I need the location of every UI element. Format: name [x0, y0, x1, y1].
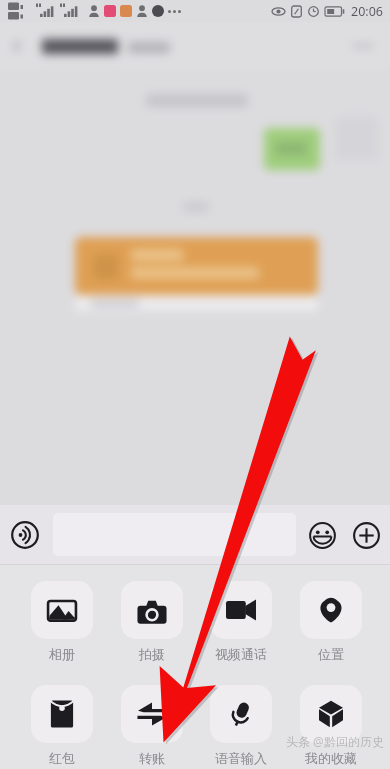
- button[interactable]: 转账: [108, 685, 196, 766]
- staticText: 视频通话: [215, 646, 267, 662]
- other: Back: [8, 37, 26, 55]
- button[interactable]: 相册: [18, 581, 106, 662]
- button[interactable]: Voice input: [7, 517, 43, 553]
- button[interactable]: 拍摄: [108, 581, 196, 662]
- button[interactable]: 视频通话: [197, 581, 285, 662]
- button[interactable]: 位置: [287, 581, 375, 662]
- button[interactable]: 我的收藏: [287, 685, 375, 766]
- staticText: 相册: [49, 646, 75, 662]
- staticText: 语音输入: [215, 750, 267, 766]
- staticText: 拍摄: [139, 646, 165, 662]
- staticText: 20:06: [351, 3, 383, 20]
- staticText: 转账: [139, 750, 165, 766]
- staticText: 红包: [49, 750, 75, 766]
- staticText: 我的收藏: [305, 750, 357, 766]
- button[interactable]: Emoji: [304, 517, 340, 553]
- staticText: 头条 @黔回的历史: [286, 733, 384, 749]
- button[interactable]: More: [348, 517, 384, 553]
- button[interactable]: 语音输入: [197, 685, 285, 766]
- button[interactable]: 红包: [18, 685, 106, 766]
- button[interactable]: [53, 513, 296, 556]
- staticText: 位置: [318, 646, 344, 662]
